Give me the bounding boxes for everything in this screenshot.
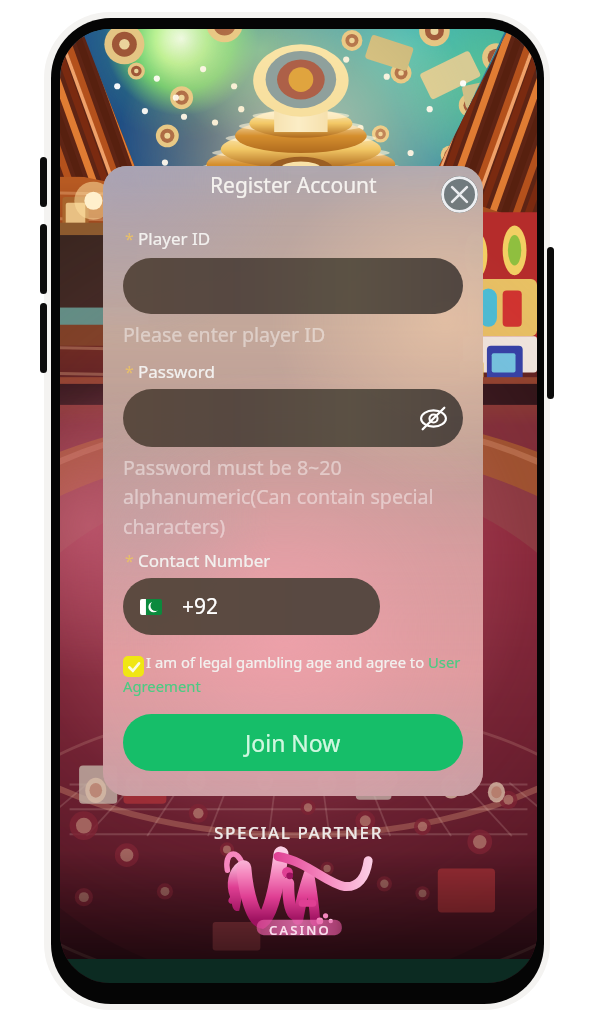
- button[interactable]: I am of legal gambling age and agree to …: [123, 652, 468, 696]
- staticText: *: [125, 228, 134, 250]
- button[interactable]: +92: [123, 578, 380, 635]
- button[interactable]: [123, 258, 463, 314]
- button[interactable]: Join Now: [123, 714, 463, 771]
- staticText: Password must be 8~20 alphanumeric(Can c…: [123, 454, 434, 540]
- staticText: Join Now: [245, 727, 341, 758]
- staticText: Register Account: [210, 171, 377, 200]
- staticText: CASINO: [269, 921, 332, 939]
- button[interactable]: Show password: [420, 405, 447, 432]
- staticText: Password: [138, 360, 215, 383]
- staticText: SPECIAL PARTNER: [214, 821, 383, 844]
- staticText: Player ID: [138, 227, 211, 250]
- button[interactable]: [123, 389, 463, 447]
- staticText: *: [125, 550, 134, 572]
- button[interactable]: Agree to user agreement: [123, 656, 144, 677]
- button[interactable]: Close: [441, 176, 478, 213]
- staticText: +92: [182, 592, 219, 621]
- staticText: Please enter player ID: [123, 321, 326, 348]
- staticText: *: [125, 361, 134, 383]
- staticText: Contact Number: [138, 549, 271, 572]
